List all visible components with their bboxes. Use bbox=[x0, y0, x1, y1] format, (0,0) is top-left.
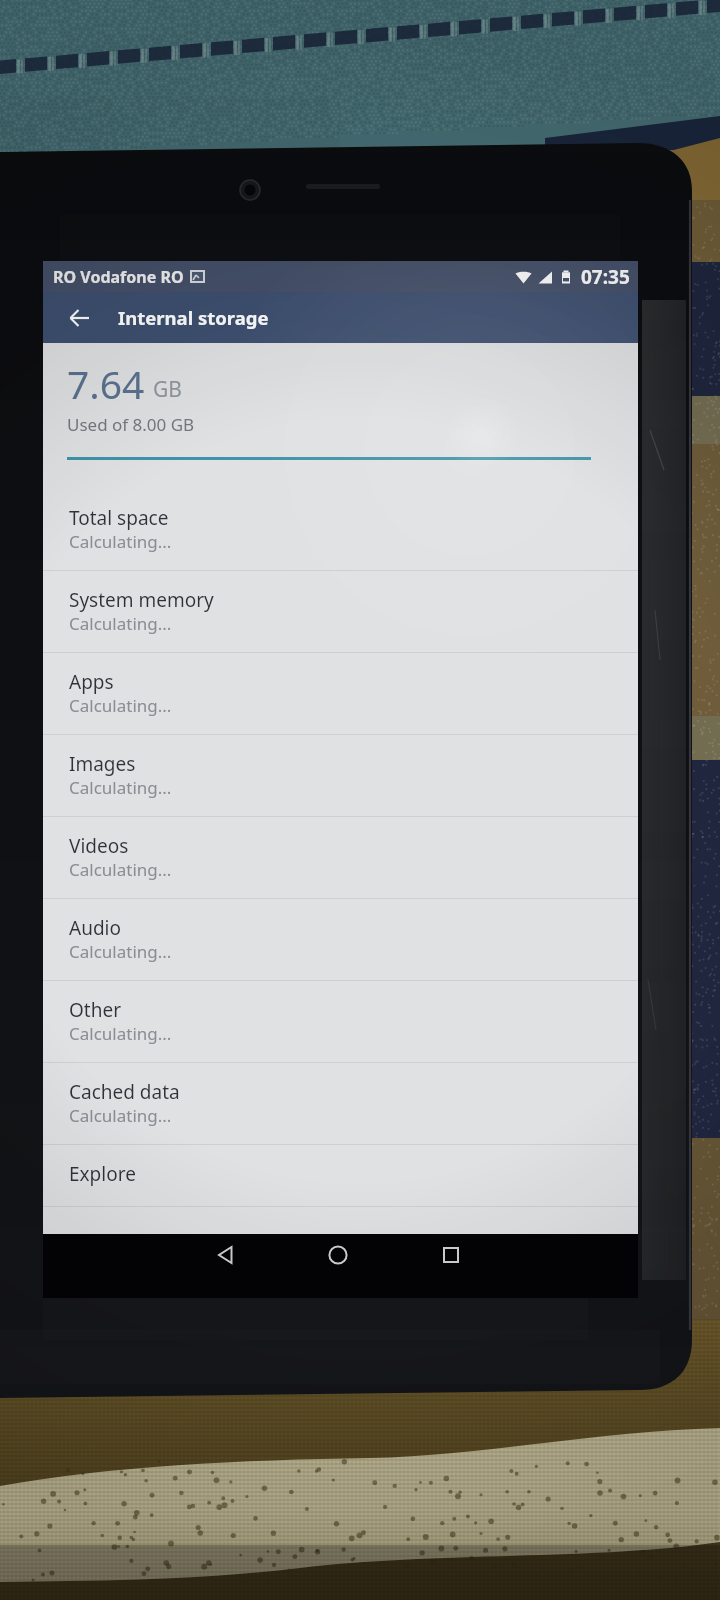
staticText: Apps bbox=[69, 669, 114, 695]
staticText: Calculating... bbox=[69, 694, 172, 717]
staticText: Videos bbox=[69, 833, 129, 859]
staticText: GB bbox=[153, 375, 182, 404]
button[interactable]: Back bbox=[206, 1235, 246, 1275]
button[interactable]: Videos bbox=[43, 817, 638, 899]
button[interactable]: Total space bbox=[43, 489, 638, 571]
staticText: Calculating... bbox=[69, 858, 172, 881]
staticText: Calculating... bbox=[69, 776, 172, 799]
button[interactable]: Navigate up bbox=[63, 301, 97, 335]
button[interactable]: Explore bbox=[43, 1145, 638, 1207]
button[interactable]: Apps bbox=[43, 653, 638, 735]
staticText: System memory bbox=[69, 587, 214, 613]
button[interactable]: Other bbox=[43, 981, 638, 1063]
staticText: Calculating... bbox=[69, 530, 172, 553]
staticText: Other bbox=[69, 997, 122, 1023]
staticText: Calculating... bbox=[69, 1104, 172, 1127]
staticText: Total space bbox=[69, 505, 169, 531]
staticText: 7.64 bbox=[67, 357, 145, 410]
staticText: Images bbox=[69, 751, 136, 777]
staticText: Calculating... bbox=[69, 1022, 172, 1045]
button[interactable]: Images bbox=[43, 735, 638, 817]
button[interactable]: Audio bbox=[43, 899, 638, 981]
button[interactable]: Home bbox=[318, 1235, 358, 1275]
staticText: Explore bbox=[69, 1161, 136, 1187]
staticText: 07:35 bbox=[581, 264, 630, 290]
staticText: RO Vodafone RO bbox=[53, 266, 184, 288]
button[interactable]: System memory bbox=[43, 571, 638, 653]
staticText: Calculating... bbox=[69, 940, 172, 963]
staticText: Audio bbox=[69, 915, 121, 941]
button[interactable]: Cached data bbox=[43, 1063, 638, 1145]
staticText: Used of 8.00 GB bbox=[67, 413, 195, 436]
staticText: Internal storage bbox=[118, 305, 269, 330]
button[interactable]: Recent apps bbox=[431, 1235, 471, 1275]
staticText: Cached data bbox=[69, 1079, 180, 1105]
staticText: Calculating... bbox=[69, 612, 172, 635]
